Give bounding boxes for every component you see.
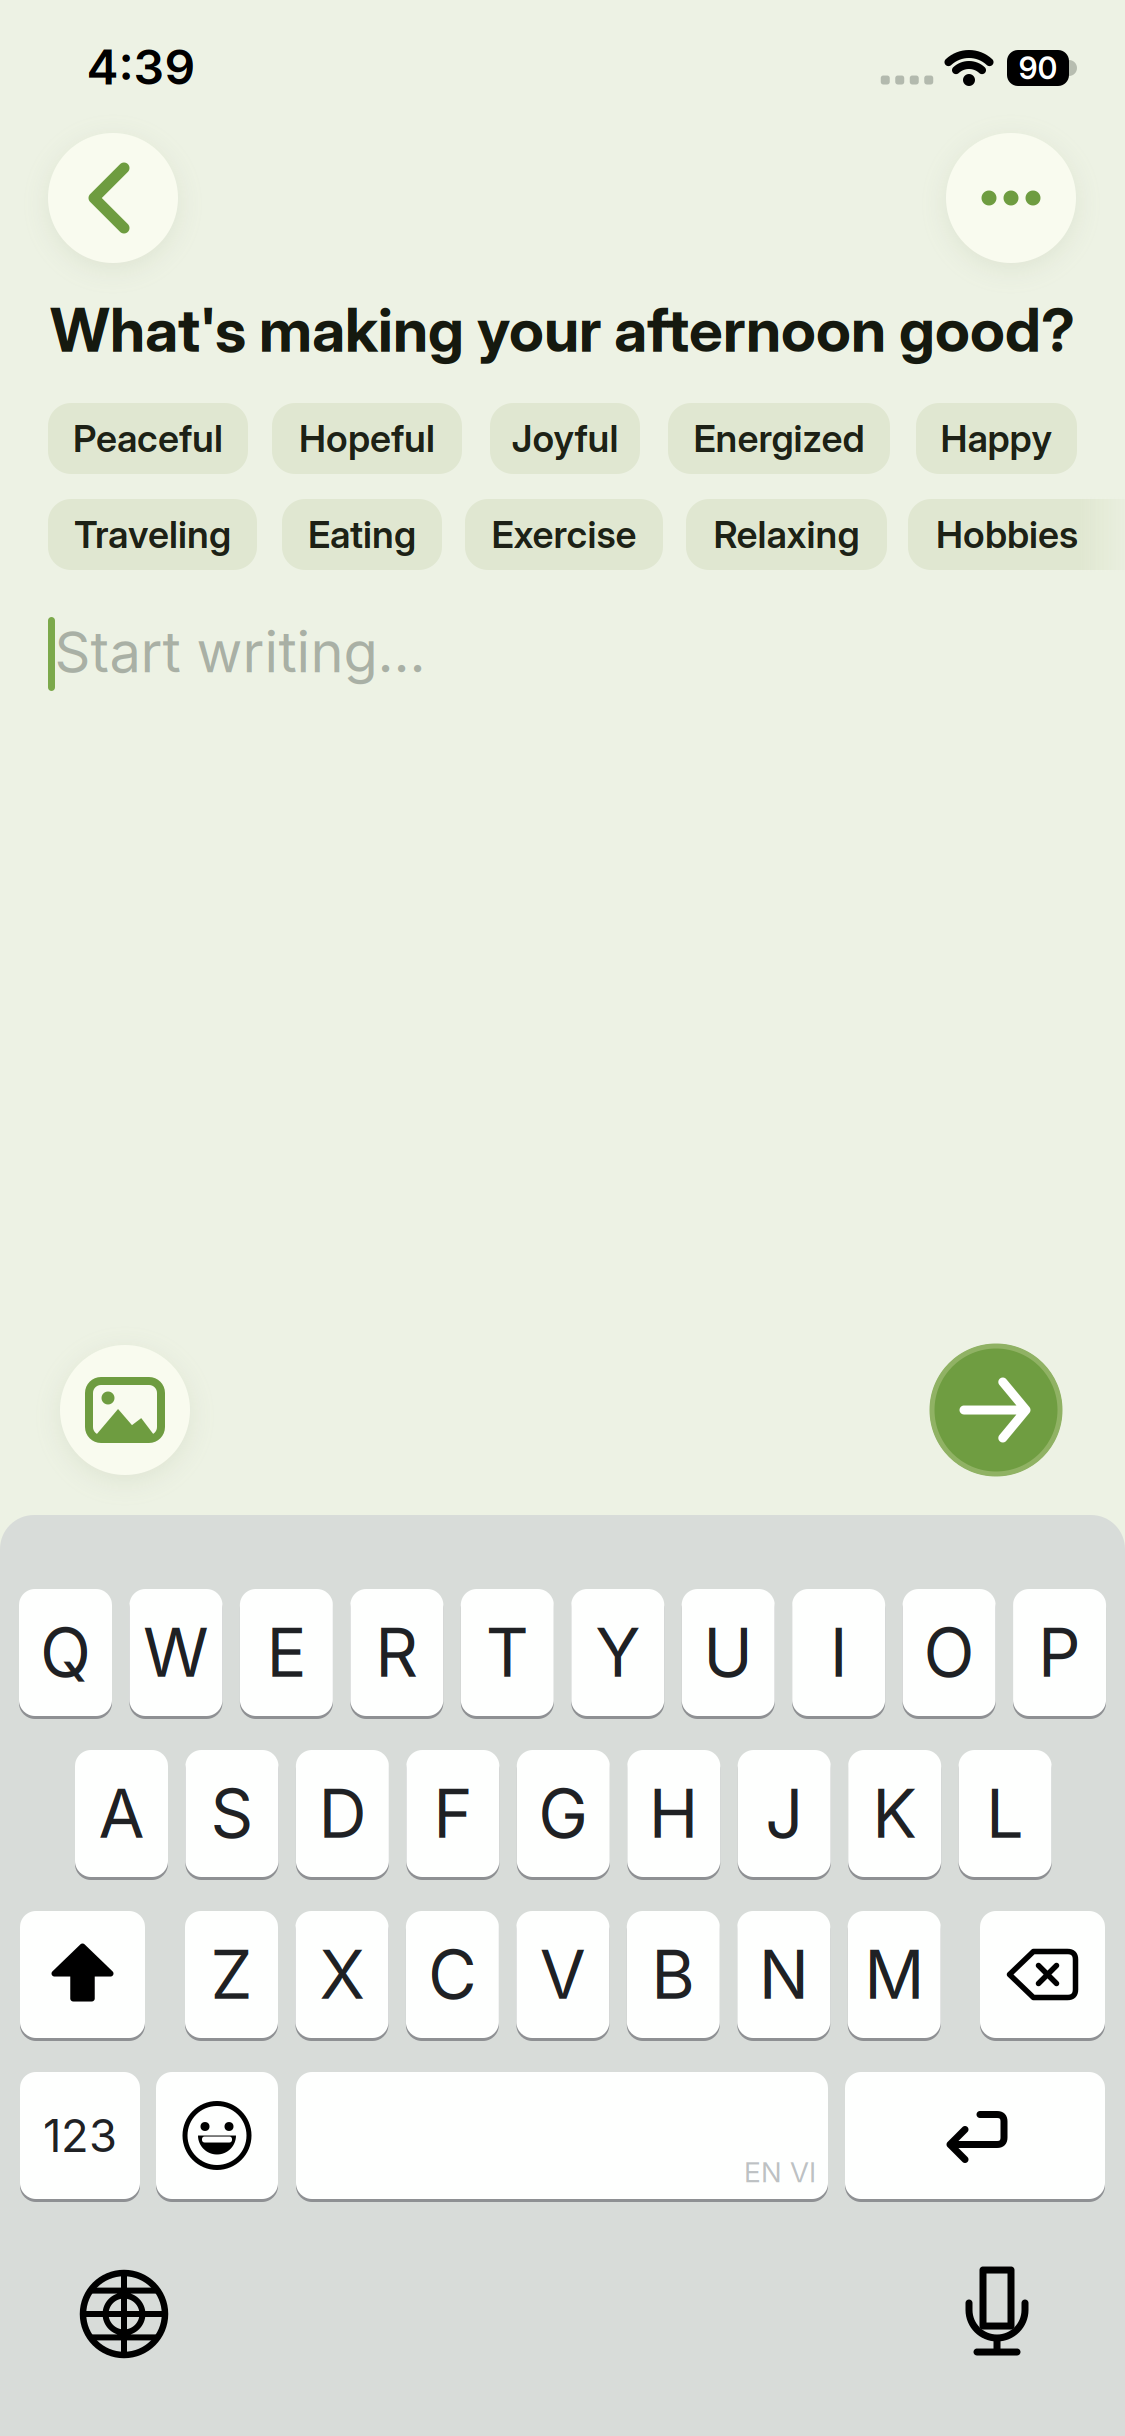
staticText: H: [649, 1773, 699, 1854]
button[interactable]: Send: [930, 1344, 1062, 1476]
button[interactable]: U: [682, 1589, 775, 1716]
button[interactable]: Y: [571, 1589, 664, 1716]
button[interactable]: Traveling: [48, 499, 257, 570]
button[interactable]: Q: [19, 1589, 112, 1716]
button[interactable]: D: [296, 1750, 389, 1877]
button[interactable]: Numbers: [20, 2072, 140, 2199]
button[interactable]: Add photo: [60, 1345, 190, 1475]
button[interactable]: E: [240, 1589, 333, 1716]
button[interactable]: S: [185, 1750, 278, 1877]
staticText: Hobbies: [936, 512, 1078, 557]
button[interactable]: Emoji: [156, 2072, 278, 2199]
staticText: I: [830, 1612, 848, 1693]
button[interactable]: Relaxing: [686, 499, 887, 570]
button[interactable]: G: [517, 1750, 610, 1877]
button[interactable]: H: [627, 1750, 720, 1877]
button[interactable]: O: [903, 1589, 996, 1716]
staticText: Happy: [940, 416, 1052, 461]
staticText: Hopeful: [299, 416, 435, 461]
staticText: Traveling: [74, 512, 231, 557]
staticText: X: [319, 1934, 364, 2015]
staticText: Start writing...: [54, 618, 425, 686]
staticText: E: [266, 1612, 306, 1693]
button[interactable]: F: [406, 1750, 499, 1877]
button[interactable]: Exercise: [465, 499, 663, 570]
button[interactable]: T: [461, 1589, 554, 1716]
staticText: O: [924, 1612, 975, 1693]
button[interactable]: Next keyboard: [80, 2270, 168, 2358]
button[interactable]: B: [627, 1911, 720, 2038]
staticText: F: [433, 1773, 472, 1854]
button[interactable]: V: [516, 1911, 609, 2038]
button[interactable]: A: [75, 1750, 168, 1877]
staticText: Exercise: [491, 512, 636, 557]
button[interactable]: Energized: [668, 403, 890, 474]
button[interactable]: M: [848, 1911, 941, 2038]
staticText: Relaxing: [713, 512, 859, 557]
staticText: V: [540, 1934, 586, 2015]
staticText: Y: [595, 1612, 640, 1693]
staticText: Eating: [308, 512, 416, 557]
button[interactable]: Dictate: [957, 2263, 1037, 2359]
button[interactable]: Z: [185, 1911, 278, 2038]
staticText: B: [651, 1934, 695, 2015]
staticText: K: [872, 1773, 917, 1854]
button[interactable]: Happy: [916, 403, 1077, 474]
staticText: C: [428, 1934, 477, 2015]
staticText: W: [143, 1612, 209, 1693]
staticText: Energized: [693, 416, 864, 461]
staticText: P: [1038, 1612, 1081, 1693]
staticText: EN VI: [744, 2155, 816, 2189]
button[interactable]: Return: [845, 2072, 1105, 2199]
button[interactable]: Delete: [980, 1911, 1105, 2038]
button[interactable]: Eating: [282, 499, 442, 570]
button[interactable]: K: [848, 1750, 941, 1877]
staticText: M: [864, 1934, 924, 2015]
button[interactable]: Shift: [20, 1911, 145, 2038]
button[interactable]: Hopeful: [272, 403, 462, 474]
button[interactable]: Joyful: [490, 403, 640, 474]
button[interactable]: W: [129, 1589, 222, 1716]
staticText: L: [986, 1773, 1024, 1854]
button[interactable]: L: [959, 1750, 1052, 1877]
button[interactable]: More: [946, 133, 1076, 263]
button[interactable]: Back: [48, 133, 178, 263]
staticText: Joyful: [511, 416, 618, 461]
button[interactable]: N: [737, 1911, 830, 2038]
staticText: A: [98, 1773, 144, 1854]
button[interactable]: X: [295, 1911, 388, 2038]
staticText: D: [318, 1773, 366, 1854]
button[interactable]: C: [406, 1911, 499, 2038]
staticText: U: [703, 1612, 753, 1693]
staticText: R: [375, 1612, 418, 1693]
button[interactable]: J: [738, 1750, 831, 1877]
staticText: What's making your afternoon good?: [50, 294, 1075, 366]
staticText: Peaceful: [73, 416, 223, 461]
staticText: Q: [40, 1612, 91, 1693]
button[interactable]: Peaceful: [48, 403, 248, 474]
staticText: T: [486, 1612, 529, 1693]
staticText: J: [765, 1773, 803, 1854]
button[interactable]: P: [1013, 1589, 1106, 1716]
staticText: Z: [210, 1934, 252, 2015]
staticText: 123: [43, 2108, 117, 2163]
staticText: 90: [1018, 49, 1057, 86]
staticText: G: [538, 1773, 588, 1854]
button[interactable]: Hobbies: [908, 499, 1125, 570]
staticText: S: [210, 1773, 253, 1854]
staticText: 4:39: [86, 38, 195, 96]
button[interactable]: R: [350, 1589, 443, 1716]
staticText: N: [759, 1934, 809, 2015]
button[interactable]: Space: [296, 2072, 828, 2199]
button[interactable]: I: [792, 1589, 885, 1716]
